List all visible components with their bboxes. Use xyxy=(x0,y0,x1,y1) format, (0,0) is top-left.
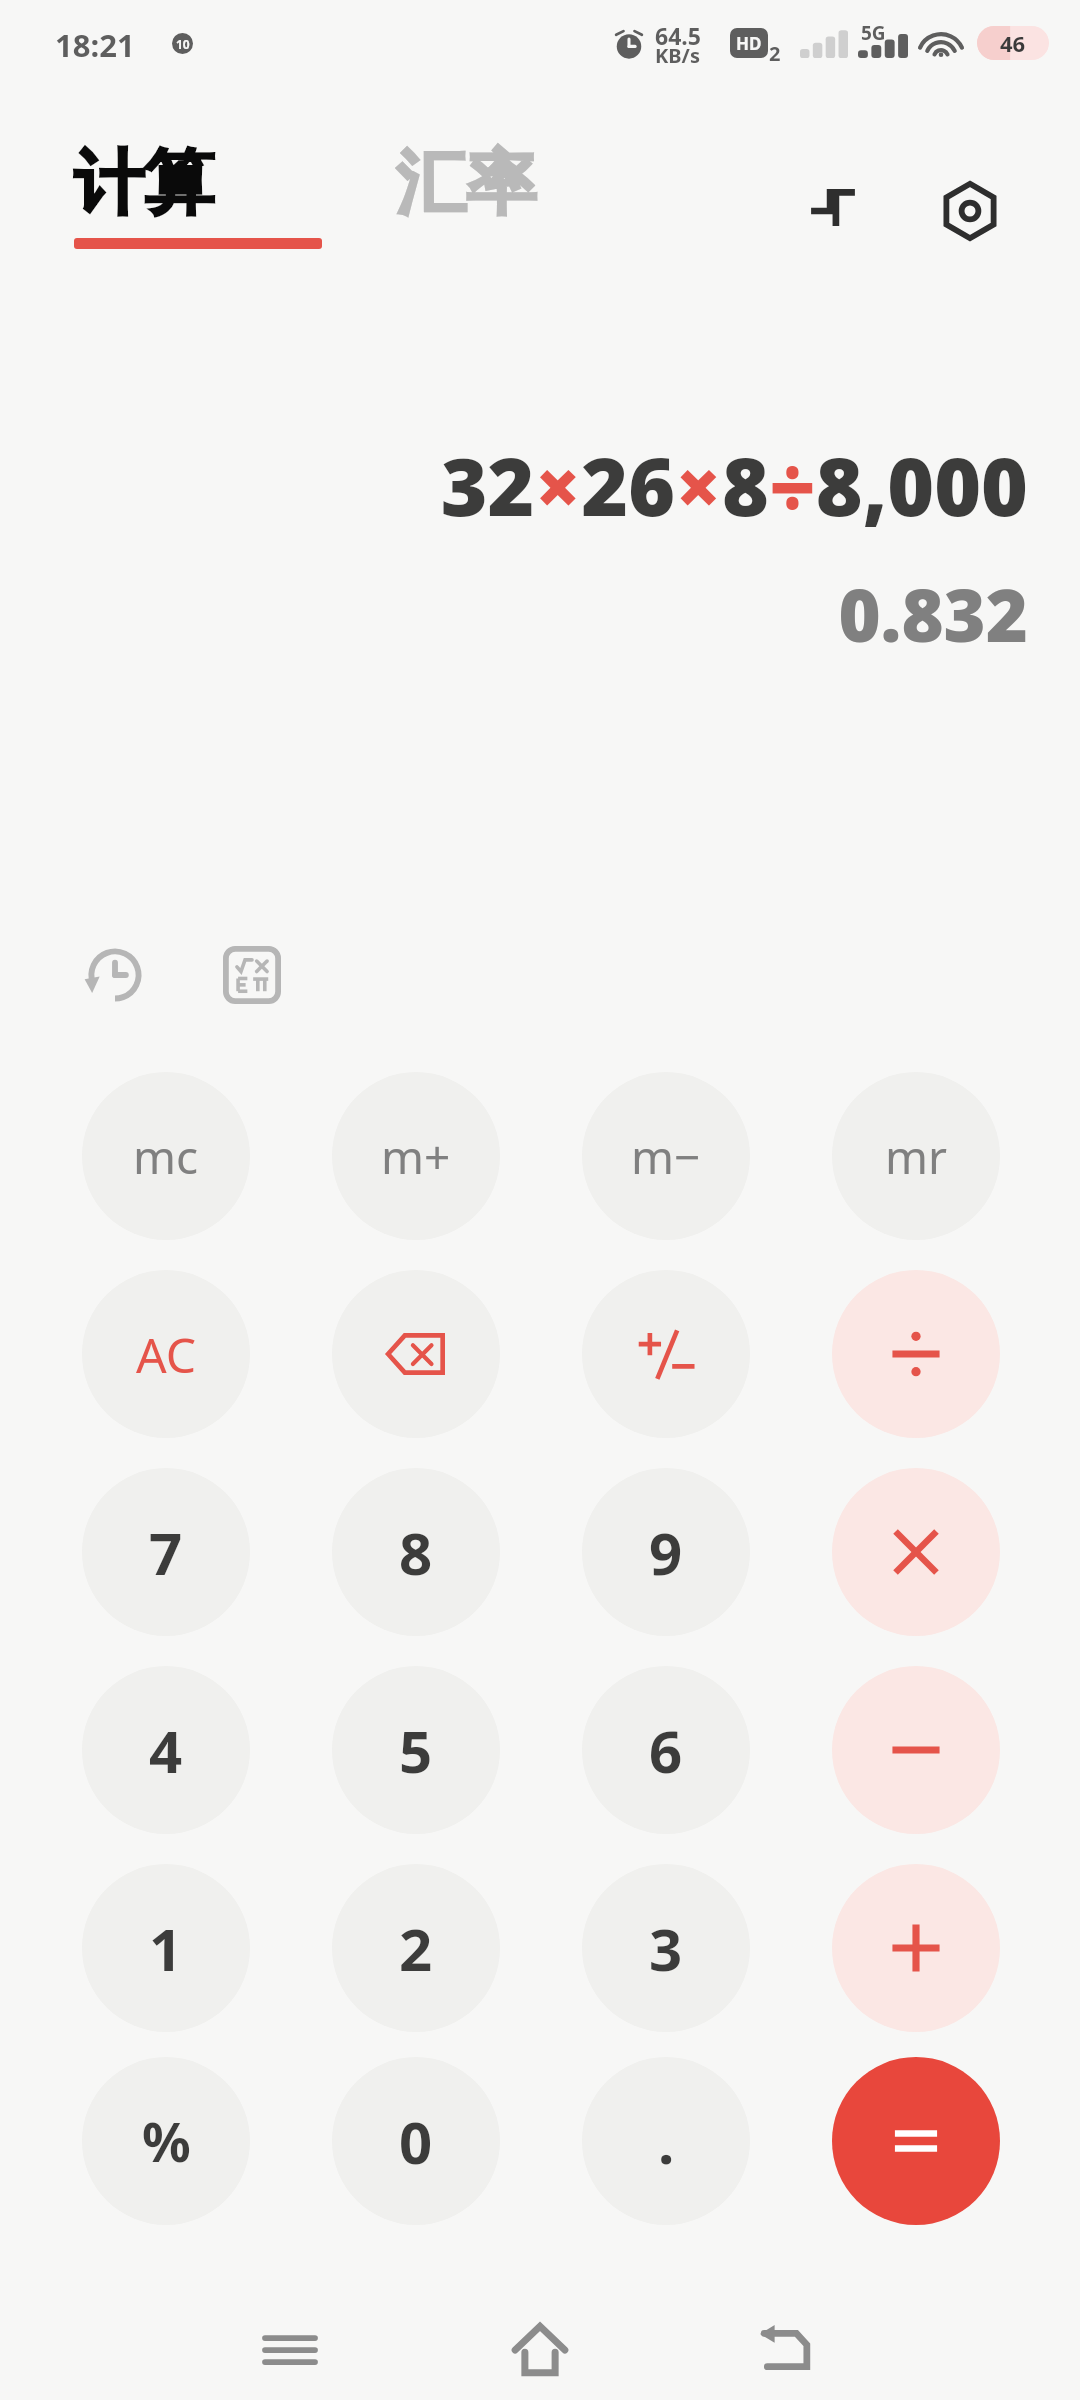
staticText: 2 xyxy=(769,40,781,67)
button[interactable]: 3 xyxy=(582,1864,750,2032)
button[interactable]: Plus xyxy=(832,1864,1000,2032)
button[interactable]: m− xyxy=(582,1072,750,1240)
button[interactable]: 5 xyxy=(332,1666,500,1834)
button[interactable]: . xyxy=(582,2057,750,2225)
button[interactable]: mc xyxy=(82,1072,250,1240)
staticText: 5G xyxy=(861,20,886,46)
staticText: 3 xyxy=(649,1909,683,1988)
button[interactable]: Scientific calculator xyxy=(207,930,297,1020)
staticText: 64.5 xyxy=(655,20,701,51)
staticText: AC xyxy=(136,1322,197,1387)
staticText: 0 xyxy=(399,2102,433,2181)
staticText: % xyxy=(142,2104,191,2178)
button[interactable]: Unit converter xyxy=(785,163,881,259)
button[interactable]: m+ xyxy=(332,1072,500,1240)
staticText: mc xyxy=(133,1125,199,1188)
button[interactable]: Recents xyxy=(240,2300,340,2400)
button[interactable]: 9 xyxy=(582,1468,750,1636)
staticText: 18:21 xyxy=(55,24,135,66)
button[interactable]: Minus xyxy=(832,1666,1000,1834)
button[interactable]: Divide xyxy=(832,1270,1000,1438)
staticText: 9 xyxy=(649,1513,683,1592)
button[interactable]: Multiply xyxy=(832,1468,1000,1636)
button[interactable]: 1 xyxy=(82,1864,250,2032)
staticText: 1 xyxy=(149,1909,183,1988)
staticText: 46 xyxy=(1000,28,1026,58)
button[interactable]: % xyxy=(82,2057,250,2225)
staticText: 2 xyxy=(399,1909,433,1988)
button[interactable]: Backspace xyxy=(332,1270,500,1438)
button[interactable]: Equals xyxy=(832,2057,1000,2225)
button[interactable]: 8 xyxy=(332,1468,500,1636)
staticText: m+ xyxy=(381,1125,451,1188)
button[interactable]: AC xyxy=(82,1270,250,1438)
button[interactable]: Settings xyxy=(922,163,1018,259)
staticText: 32×26×8÷8,000 xyxy=(440,430,1028,539)
staticText: . xyxy=(658,2102,675,2181)
button[interactable]: History xyxy=(70,930,160,1020)
staticText: HD xyxy=(736,32,762,55)
staticText: 7 xyxy=(149,1513,183,1592)
staticText: 汇率 xyxy=(396,140,536,228)
button[interactable]: 0 xyxy=(332,2057,500,2225)
button[interactable]: mr xyxy=(832,1072,1000,1240)
staticText: KB/s xyxy=(655,42,700,69)
staticText: 0.832 xyxy=(838,565,1028,663)
staticText: 6 xyxy=(649,1711,683,1790)
button[interactable]: Home xyxy=(490,2300,590,2400)
staticText: mr xyxy=(885,1125,948,1188)
staticText: 5 xyxy=(399,1711,433,1790)
staticText: 计算 xyxy=(74,140,214,228)
button[interactable]: 4 xyxy=(82,1666,250,1834)
staticText: 4 xyxy=(149,1711,183,1790)
button[interactable]: 7 xyxy=(82,1468,250,1636)
button[interactable]: 2 xyxy=(332,1864,500,2032)
staticText: 8 xyxy=(399,1513,433,1592)
staticText: m− xyxy=(631,1125,701,1188)
button[interactable]: 6 xyxy=(582,1666,750,1834)
button[interactable]: Plus minus xyxy=(582,1270,750,1438)
button[interactable]: 计算 xyxy=(68,140,328,249)
button[interactable]: Back xyxy=(735,2300,835,2400)
button[interactable]: 汇率 xyxy=(390,140,542,228)
staticText: 10 xyxy=(176,36,190,52)
